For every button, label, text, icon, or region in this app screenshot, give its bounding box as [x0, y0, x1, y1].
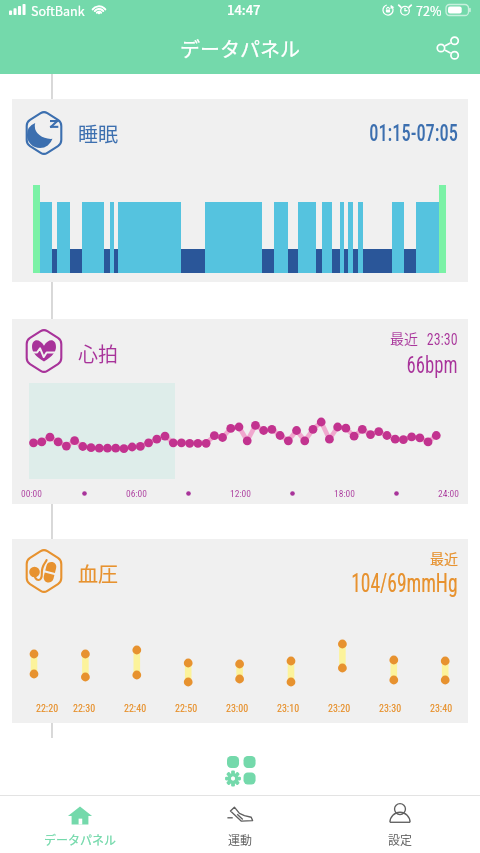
button[interactable]: 血圧: [12, 539, 468, 723]
button[interactable]: 運動: [160, 796, 320, 853]
staticText: 最近: [390, 328, 418, 348]
button[interactable]: Share: [432, 32, 464, 64]
staticText: 01:15-07:05: [369, 120, 458, 147]
staticText: 18:00: [334, 488, 355, 499]
staticText: 睡眠: [78, 119, 118, 148]
button[interactable]: データパネル: [0, 796, 160, 853]
staticText: 23:40: [430, 703, 453, 715]
staticText: 血圧: [78, 559, 118, 588]
staticText: データパネル: [180, 34, 300, 63]
staticText: 最近: [430, 548, 458, 568]
staticText: 23:00: [226, 703, 249, 715]
staticText: 22:50: [175, 703, 198, 715]
staticText: 72%: [416, 1, 442, 19]
staticText: 12:00: [230, 488, 251, 499]
staticText: SoftBank: [31, 1, 85, 19]
staticText: 設定: [388, 831, 413, 848]
staticText: 22:20: [36, 703, 59, 715]
staticText: 22:40: [124, 703, 147, 715]
button[interactable]: 睡眠: [12, 99, 468, 282]
staticText: 06:00: [126, 488, 147, 499]
staticText: 22:30: [73, 703, 96, 715]
staticText: 00:00: [21, 488, 42, 499]
staticText: 66bpm: [406, 351, 458, 379]
button[interactable]: 設定: [320, 796, 480, 853]
staticText: 運動: [228, 831, 253, 848]
staticText: 104/69mmHg: [351, 569, 458, 598]
staticText: データパネル: [44, 831, 117, 848]
staticText: 23:30: [379, 703, 402, 715]
staticText: 23:10: [277, 703, 300, 715]
staticText: 24:00: [438, 488, 459, 499]
staticText: 心拍: [78, 339, 118, 368]
button[interactable]: Panels: [220, 749, 260, 789]
staticText: 23:30: [427, 329, 458, 349]
button[interactable]: 心拍: [12, 319, 468, 504]
staticText: 23:20: [328, 703, 351, 715]
staticText: 14:47: [227, 0, 261, 19]
